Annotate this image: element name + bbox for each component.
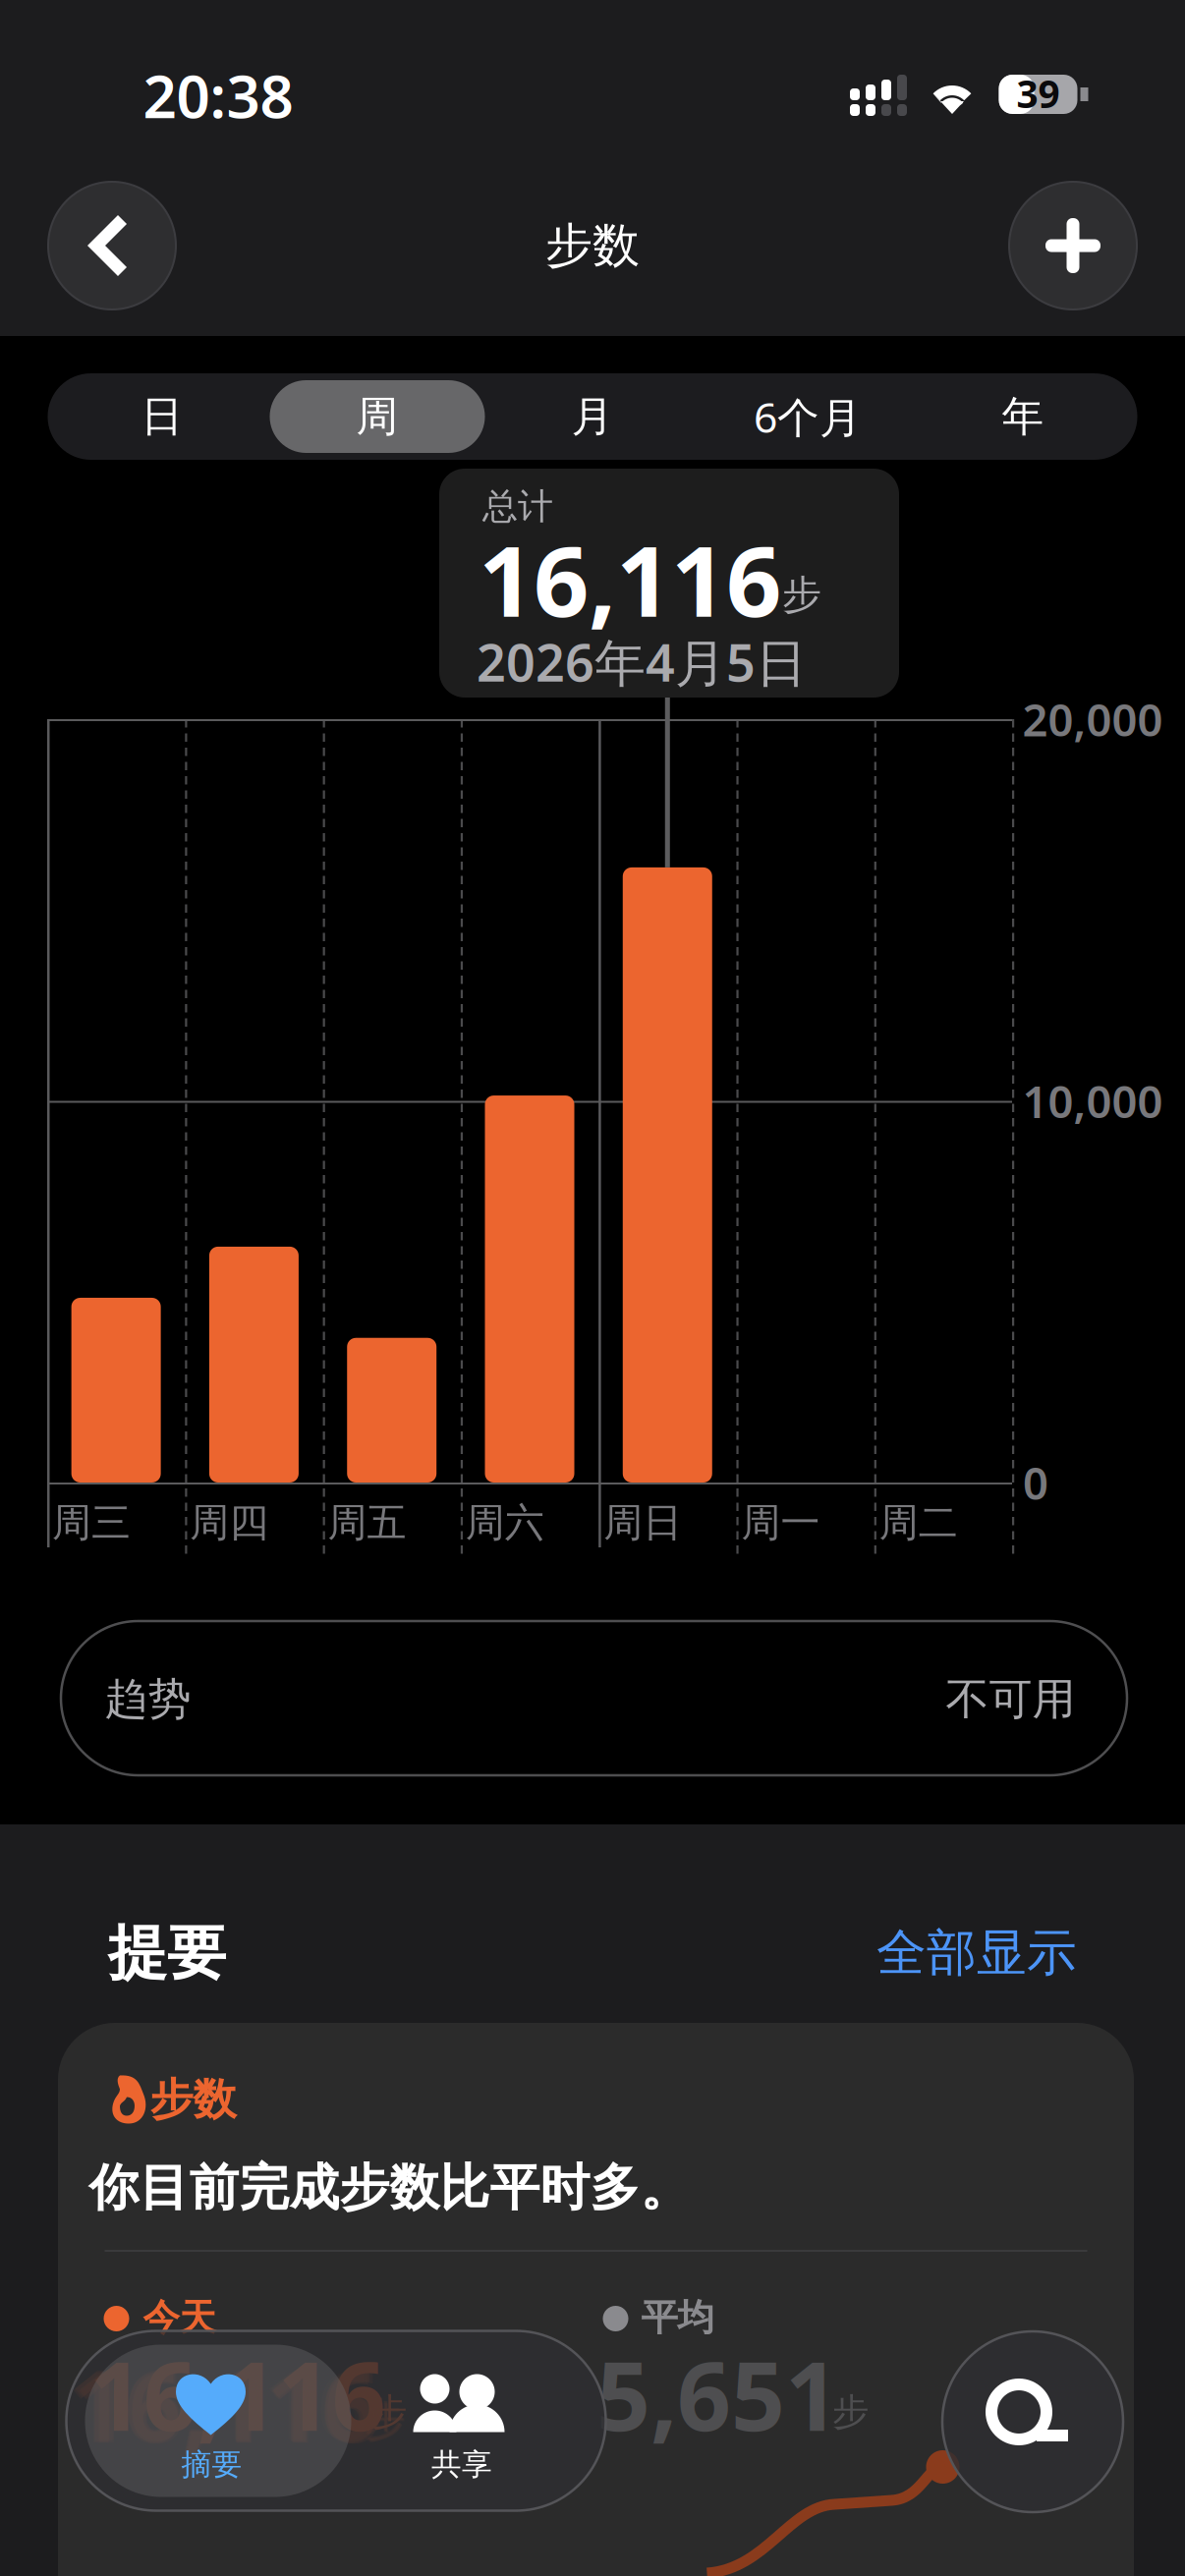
staticText: 步	[364, 2396, 404, 2446]
staticText: 周一	[741, 1499, 820, 1547]
staticText: 步	[370, 2389, 407, 2435]
button[interactable]: 添加数据	[1009, 182, 1137, 309]
staticText: 16,116	[67, 2338, 381, 2470]
button[interactable]: 共享	[346, 2345, 582, 2497]
staticText: 16,116	[69, 2338, 377, 2468]
button[interactable]: 日	[55, 380, 270, 453]
staticText: 5,651	[596, 2332, 839, 2457]
staticText: 步数	[545, 217, 640, 275]
staticText: 步	[782, 571, 821, 619]
staticText: 39	[1016, 68, 1060, 118]
staticText: 今天	[143, 2295, 216, 2340]
staticText: 平均	[641, 2295, 714, 2340]
button[interactable]: 月	[485, 380, 700, 453]
staticText: 周二	[879, 1499, 958, 1547]
staticText: 提要	[108, 1917, 226, 1989]
button[interactable]: 摘要	[85, 2345, 351, 2497]
staticText: 总计	[482, 485, 553, 528]
staticText: 共享	[431, 2446, 492, 2483]
staticText: 20:38	[143, 56, 293, 134]
staticText: 全部显示	[876, 1923, 1077, 1984]
staticText: 不可用	[946, 1673, 1075, 1726]
staticText: 周四	[190, 1499, 269, 1547]
button[interactable]: 返回	[48, 182, 176, 309]
staticText: 周	[356, 391, 398, 442]
staticText: 周三	[52, 1499, 131, 1547]
staticText: 步	[364, 2396, 406, 2447]
staticText: 20,000	[1022, 690, 1163, 749]
staticText: 16,116	[75, 2341, 371, 2466]
staticText: 6个月	[754, 389, 862, 444]
staticText: 16,116	[74, 2341, 376, 2469]
button[interactable]: 年	[915, 380, 1130, 453]
staticText: 步	[366, 2398, 404, 2445]
staticText: 步数	[150, 2073, 236, 2126]
staticText: 日	[141, 391, 183, 442]
staticText: 步	[367, 2399, 406, 2447]
staticText: 你目前完成步数比平时多。	[89, 2157, 690, 2218]
button[interactable]: 趋势	[61, 1622, 1128, 1776]
button[interactable]: 周	[270, 380, 485, 453]
staticText: 2026年4月5日	[477, 628, 807, 696]
staticText: 周六	[466, 1499, 544, 1547]
button[interactable]: 搜索	[942, 2331, 1123, 2512]
button[interactable]: 6个月	[700, 380, 915, 453]
staticText: 步	[366, 2398, 402, 2443]
staticText: 月	[571, 391, 614, 442]
button[interactable]: 全部显示	[865, 1909, 1089, 1997]
staticText: 趋势	[105, 1673, 191, 1726]
staticText: 0	[1023, 1453, 1048, 1512]
staticText: 年	[1002, 391, 1044, 442]
staticText: 摘要	[181, 2446, 242, 2483]
staticText: 周五	[328, 1499, 406, 1547]
staticText: 16,116	[89, 2332, 386, 2457]
staticText: 周日	[603, 1499, 682, 1547]
staticText: 16,116	[73, 2341, 375, 2468]
staticText: 16,116	[479, 515, 781, 644]
staticText: 步	[832, 2389, 869, 2435]
staticText: 10,000	[1022, 1071, 1163, 1130]
